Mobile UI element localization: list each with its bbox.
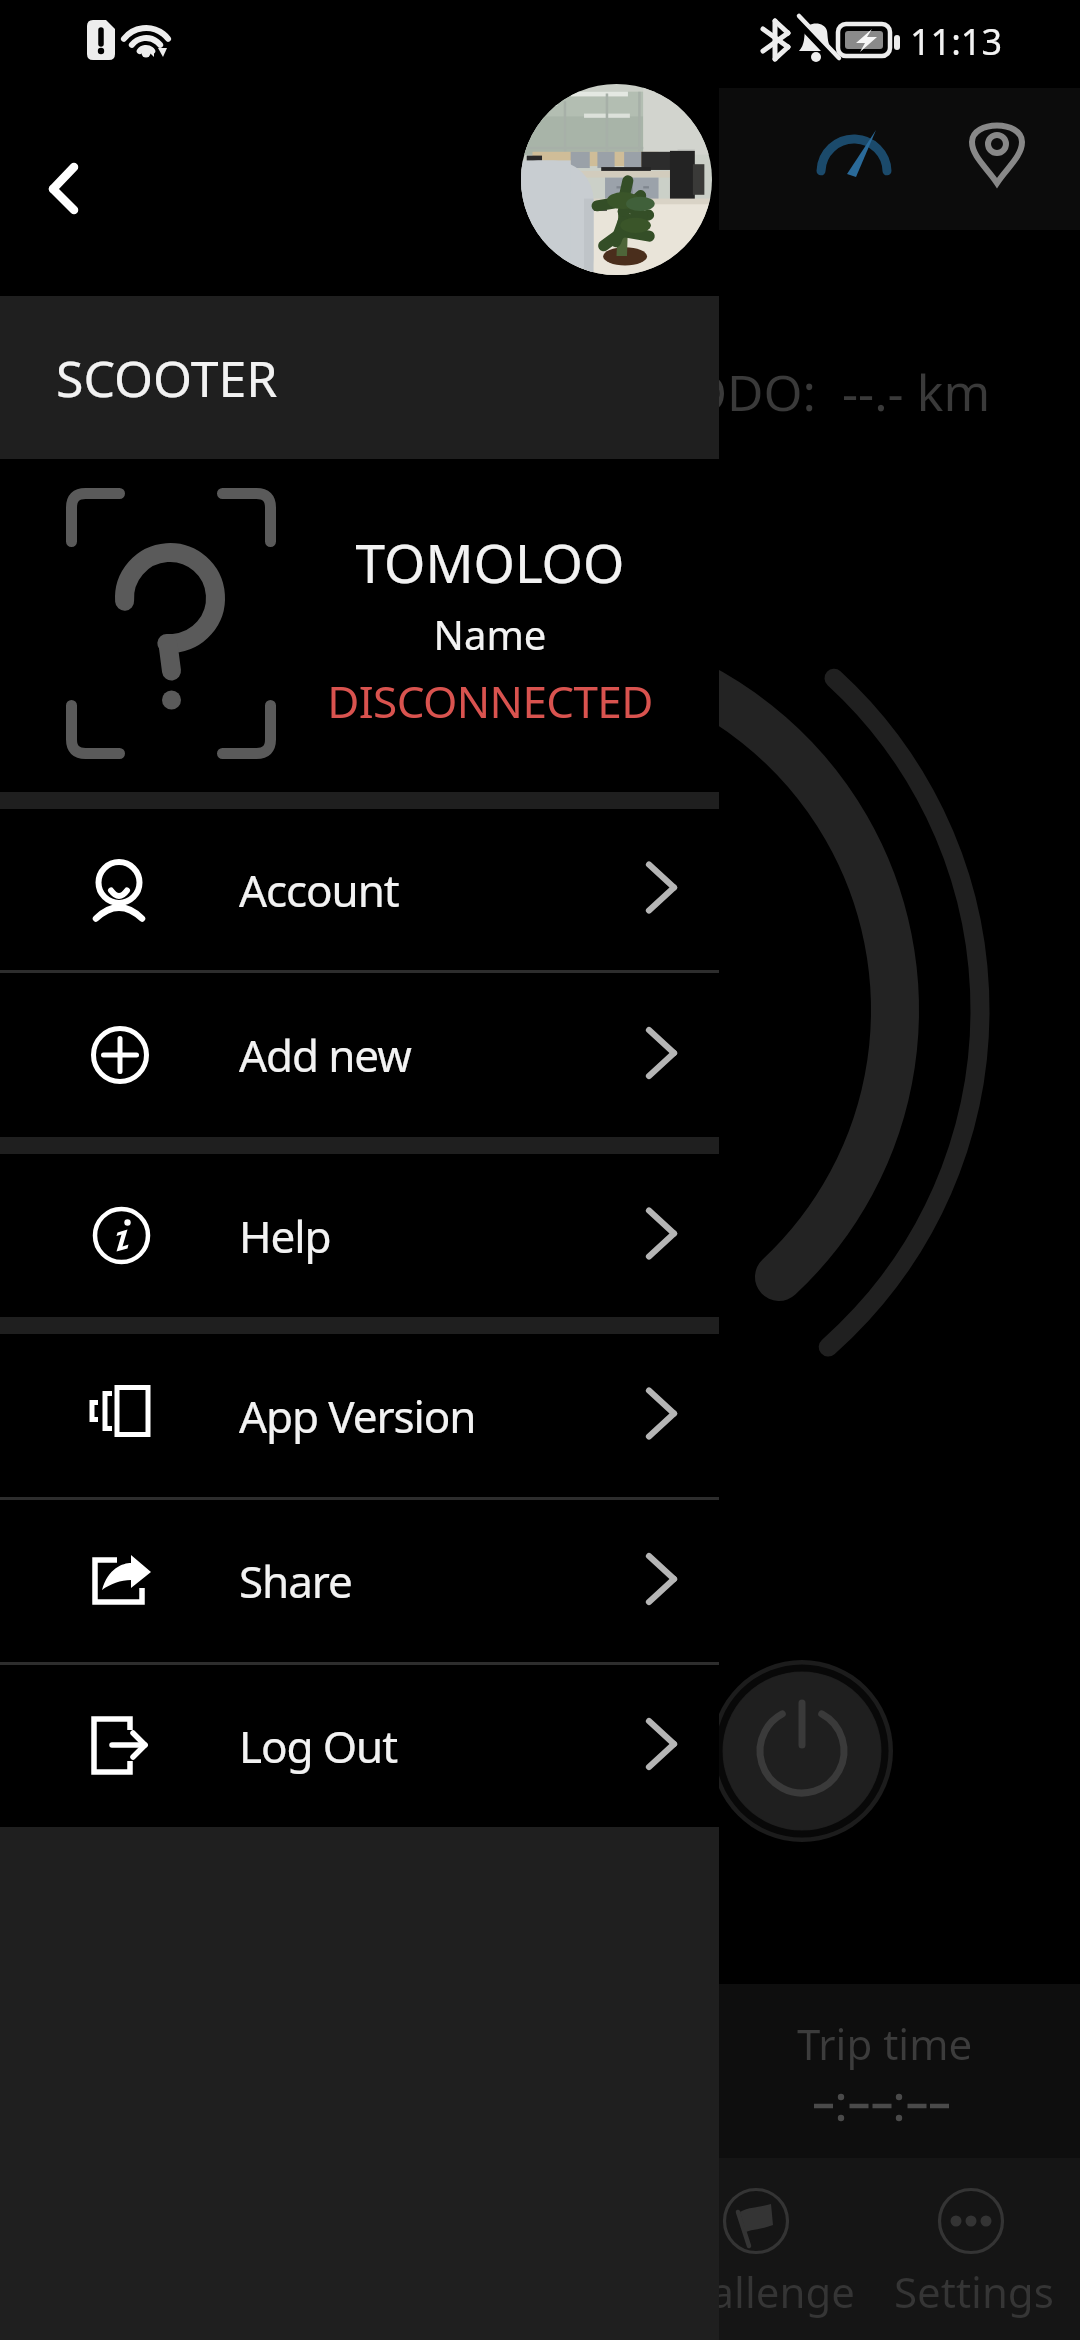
staticText: SCOOTER (56, 344, 278, 412)
button[interactable]: Back (16, 140, 114, 238)
button[interactable]: Share (0, 1500, 719, 1662)
staticText: Help (239, 1206, 331, 1266)
staticText: Settings (894, 2263, 1054, 2320)
staticText: TOMOLOO (290, 526, 690, 598)
staticText: DISCONNECTED (290, 671, 690, 731)
button[interactable]: App Version (0, 1334, 719, 1497)
staticText: Challenge (658, 2263, 855, 2320)
button[interactable]: Help (0, 1154, 719, 1317)
button[interactable]: Account (0, 809, 719, 970)
button[interactable]: Profile photo (521, 84, 712, 275)
button[interactable]: Log Out (0, 1665, 719, 1827)
staticText: Account (239, 860, 399, 920)
staticText: Add new (239, 1025, 411, 1085)
staticText: ODO: --.- km (688, 358, 991, 426)
staticText: Trip time (797, 2015, 973, 2072)
staticText: Share (239, 1551, 352, 1611)
button[interactable]: Add new (0, 973, 719, 1137)
staticText: Log Out (239, 1716, 397, 1776)
staticText: 11:13 (910, 17, 1003, 66)
staticText: App Version (239, 1386, 476, 1446)
staticText: Name (290, 607, 690, 661)
